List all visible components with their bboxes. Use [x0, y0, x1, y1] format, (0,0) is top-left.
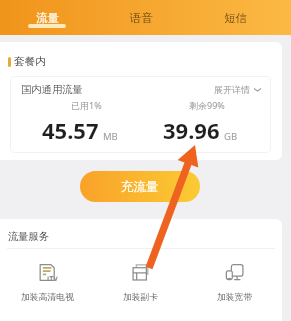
staticText: GB [224, 130, 238, 143]
button[interactable]: 展开详情 [214, 84, 262, 95]
staticText: 45.57 [42, 115, 99, 145]
staticText: 充流量 [121, 179, 159, 195]
button[interactable]: 加装副卡 [94, 264, 188, 303]
button[interactable]: 流量 [0, 0, 94, 35]
staticText: 国内通用流量 [21, 83, 83, 96]
staticText: 已用1% [71, 99, 102, 111]
staticText: 剩余99% [189, 99, 225, 111]
button[interactable]: 加装高清电视 [0, 264, 94, 303]
staticText: MB [103, 130, 118, 143]
staticText: 加装高清电视 [21, 292, 74, 303]
staticText: 展开详情 [214, 84, 250, 95]
button[interactable]: 短信 [188, 0, 282, 35]
button[interactable]: 加装宽带 [188, 264, 282, 303]
staticText: 语音 [130, 11, 153, 25]
staticText: 套餐内 [14, 55, 46, 68]
staticText: 流量 [36, 11, 59, 25]
staticText: 流量服务 [8, 230, 50, 243]
staticText: 加装副卡 [123, 292, 159, 303]
staticText: 加装宽带 [217, 292, 253, 303]
button[interactable]: 语音 [94, 0, 188, 35]
button[interactable]: 充流量 [80, 171, 200, 202]
staticText: 39.96 [163, 115, 220, 145]
staticText: 短信 [224, 11, 247, 25]
